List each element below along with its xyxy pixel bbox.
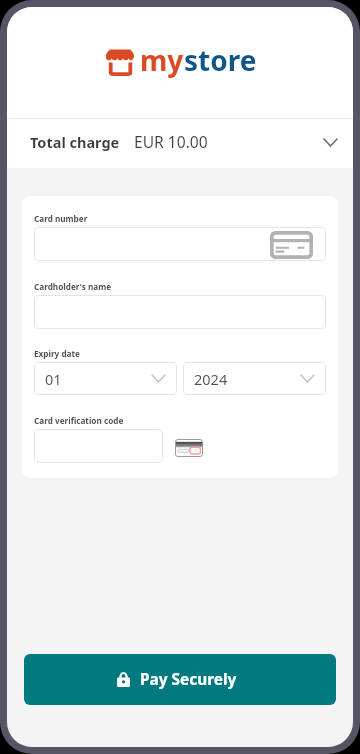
staticText: 01 (45, 369, 62, 389)
staticText: 2024 (194, 369, 228, 389)
staticText: Card verification code (34, 415, 124, 426)
staticText: EUR 10.00 (134, 131, 208, 152)
button[interactable]: Total charge (7, 119, 353, 168)
button[interactable]: 2024 (183, 362, 326, 395)
button[interactable]: Pay Securely (24, 654, 336, 705)
staticText: Pay Securely (140, 669, 237, 690)
other: Where to find the CVC (175, 439, 203, 457)
button[interactable] (34, 429, 163, 463)
staticText: Card number (34, 213, 88, 224)
other: Expand total (324, 139, 337, 146)
staticText: Total charge (30, 132, 120, 152)
button[interactable] (34, 295, 326, 329)
button[interactable]: Card (34, 227, 326, 261)
staticText: my (140, 41, 184, 79)
staticText: store (184, 41, 257, 79)
staticText: Cardholder's name (34, 281, 112, 292)
other: Card (270, 231, 313, 259)
staticText: Expiry date (34, 348, 80, 359)
button[interactable]: 01 (34, 362, 177, 395)
